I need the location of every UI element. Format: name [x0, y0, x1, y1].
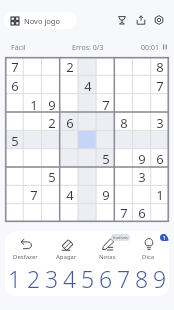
button[interactable]: [151, 168, 169, 186]
button[interactable]: 6: [61, 114, 79, 132]
button[interactable]: [151, 132, 169, 150]
button[interactable]: 6: [151, 150, 169, 168]
button[interactable]: 6: [5, 76, 24, 95]
button[interactable]: 7: [24, 186, 43, 204]
button[interactable]: 7: [115, 263, 133, 289]
button[interactable]: [115, 76, 133, 95]
button[interactable]: [5, 150, 24, 168]
button[interactable]: Pause: [160, 42, 169, 51]
button[interactable]: [115, 150, 133, 168]
button[interactable]: [115, 57, 133, 76]
button[interactable]: [79, 57, 97, 76]
button[interactable]: [43, 57, 61, 76]
button[interactable]: 1: [128, 237, 169, 261]
button[interactable]: [79, 95, 97, 114]
button[interactable]: Apagar: [46, 237, 87, 261]
button[interactable]: [97, 114, 115, 132]
button[interactable]: [61, 168, 79, 186]
button[interactable]: 4: [61, 263, 79, 289]
button[interactable]: [115, 186, 133, 204]
button[interactable]: [97, 76, 115, 95]
button[interactable]: [151, 95, 169, 114]
button[interactable]: 7: [5, 57, 24, 76]
button[interactable]: 2: [24, 263, 43, 289]
button[interactable]: 5: [97, 150, 115, 168]
button[interactable]: 4: [79, 76, 97, 95]
button[interactable]: 5: [79, 263, 97, 289]
button[interactable]: [24, 150, 43, 168]
button[interactable]: 1: [5, 263, 24, 289]
button[interactable]: [97, 57, 115, 76]
button[interactable]: 8: [133, 263, 151, 289]
staticText: 5: [102, 150, 110, 168]
button[interactable]: [24, 57, 43, 76]
button[interactable]: [133, 132, 151, 150]
button[interactable]: 9: [151, 263, 169, 289]
button[interactable]: Novo jogo: [4, 12, 77, 29]
button[interactable]: [61, 132, 79, 150]
button[interactable]: 2: [43, 114, 61, 132]
button[interactable]: [79, 204, 97, 222]
button[interactable]: [151, 204, 169, 222]
button[interactable]: [61, 150, 79, 168]
button[interactable]: [5, 204, 24, 222]
button[interactable]: [133, 95, 151, 114]
button[interactable]: 2: [61, 57, 79, 76]
button[interactable]: [24, 132, 43, 150]
button[interactable]: 3: [133, 168, 151, 186]
button[interactable]: [61, 204, 79, 222]
button[interactable]: [97, 132, 115, 150]
button[interactable]: [61, 76, 79, 95]
button[interactable]: 9: [97, 186, 115, 204]
button[interactable]: [43, 204, 61, 222]
button[interactable]: [43, 186, 61, 204]
button[interactable]: 8: [115, 114, 133, 132]
button[interactable]: [5, 186, 24, 204]
button[interactable]: [133, 76, 151, 95]
button[interactable]: Inativas: [87, 237, 128, 261]
button[interactable]: Share: [133, 12, 149, 28]
button[interactable]: [79, 168, 97, 186]
button[interactable]: [133, 114, 151, 132]
button[interactable]: [5, 168, 24, 186]
button[interactable]: [5, 114, 24, 132]
button[interactable]: 1: [24, 95, 43, 114]
button[interactable]: [79, 132, 97, 150]
button[interactable]: 7: [115, 204, 133, 222]
button[interactable]: Desfazer: [5, 237, 46, 261]
button[interactable]: [61, 95, 79, 114]
button[interactable]: 5: [43, 168, 61, 186]
button[interactable]: [115, 168, 133, 186]
button[interactable]: [24, 76, 43, 95]
button[interactable]: [97, 204, 115, 222]
button[interactable]: 4: [61, 186, 79, 204]
button[interactable]: [97, 168, 115, 186]
button[interactable]: 3: [151, 114, 169, 132]
button[interactable]: [43, 150, 61, 168]
button[interactable]: 1: [151, 186, 169, 204]
button[interactable]: Settings: [151, 12, 167, 28]
button[interactable]: [24, 114, 43, 132]
button[interactable]: 6: [97, 263, 115, 289]
button[interactable]: 8: [151, 57, 169, 76]
button[interactable]: [43, 76, 61, 95]
button[interactable]: 7: [97, 95, 115, 114]
button[interactable]: [133, 186, 151, 204]
button[interactable]: [79, 114, 97, 132]
button[interactable]: [115, 95, 133, 114]
button[interactable]: 6: [133, 204, 151, 222]
button[interactable]: 5: [5, 132, 24, 150]
button[interactable]: [79, 186, 97, 204]
button[interactable]: [133, 57, 151, 76]
button[interactable]: [115, 132, 133, 150]
button[interactable]: Trophy: [114, 12, 130, 28]
button[interactable]: [43, 132, 61, 150]
button[interactable]: 9: [43, 95, 61, 114]
button[interactable]: 7: [151, 76, 169, 95]
button[interactable]: [5, 95, 24, 114]
button[interactable]: 9: [133, 150, 151, 168]
button[interactable]: [79, 150, 97, 168]
button[interactable]: 3: [43, 263, 61, 289]
button[interactable]: [24, 168, 43, 186]
button[interactable]: [24, 204, 43, 222]
